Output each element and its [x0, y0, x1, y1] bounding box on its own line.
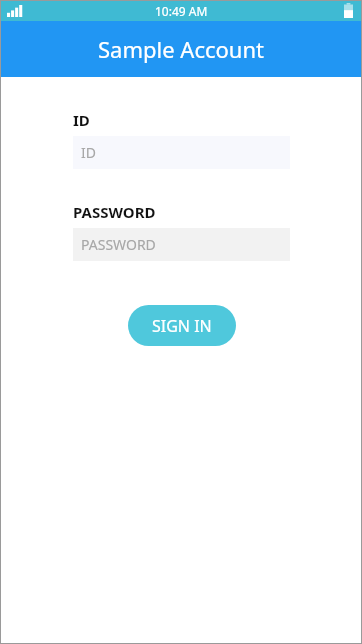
button[interactable]: PASSWORD: [73, 228, 290, 261]
other: Battery: [344, 3, 353, 18]
staticText: ID: [81, 143, 96, 162]
staticText: PASSWORD: [73, 202, 156, 222]
staticText: 10:49 AM: [155, 3, 208, 19]
staticText: Sample Account: [98, 34, 264, 64]
other: Signal strength: [7, 5, 23, 17]
button[interactable]: ID: [73, 136, 290, 169]
staticText: ID: [73, 110, 90, 130]
staticText: SIGN IN: [152, 315, 212, 337]
staticText: PASSWORD: [81, 235, 156, 254]
button[interactable]: SIGN IN: [128, 305, 236, 346]
